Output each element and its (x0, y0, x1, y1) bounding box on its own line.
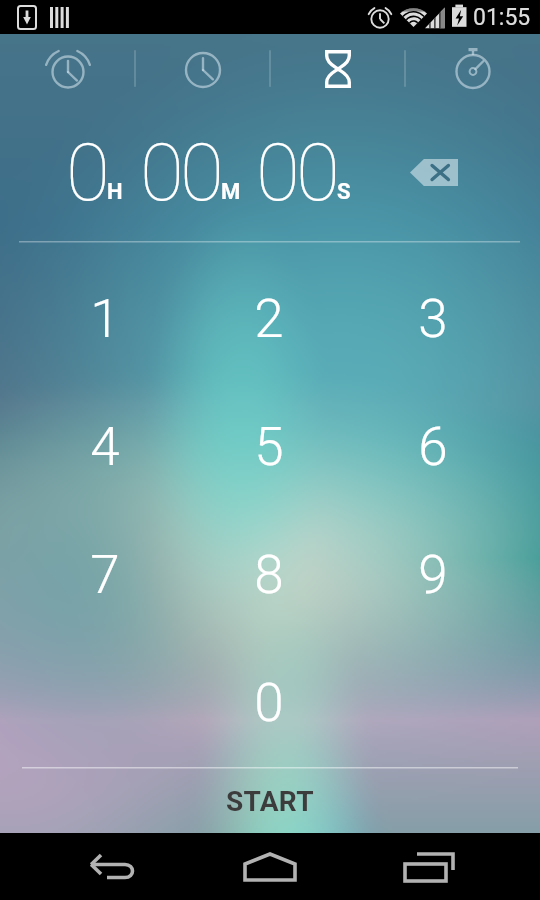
button[interactable]: 7 (23, 511, 187, 639)
staticText: 0 (254, 672, 284, 734)
button[interactable]: Timer (270, 34, 405, 100)
button[interactable]: 4 (23, 383, 187, 511)
staticText: 2 (254, 288, 284, 350)
staticText: 7 (90, 544, 120, 606)
staticText: 00 (256, 126, 336, 220)
staticText: 01:55 (473, 4, 531, 31)
button[interactable]: 3 (351, 254, 515, 383)
staticText: 8 (254, 544, 284, 606)
staticText: 5 (254, 416, 284, 478)
staticText: 00 (140, 126, 220, 220)
button[interactable]: 6 (351, 383, 515, 511)
staticText: 1 (90, 288, 120, 350)
staticText: 9 (418, 544, 448, 606)
button[interactable]: 0 (187, 639, 351, 767)
button[interactable]: Back (22, 833, 202, 900)
staticText: 6 (418, 416, 448, 478)
button[interactable]: Recent apps (339, 833, 519, 900)
button[interactable]: Clock (135, 34, 270, 100)
staticText: H (107, 179, 123, 205)
button[interactable]: 9 (351, 511, 515, 639)
button[interactable]: Delete (398, 144, 470, 200)
button[interactable]: 8 (187, 511, 351, 639)
button[interactable]: 1 (23, 254, 187, 383)
button[interactable]: Alarm (0, 34, 135, 100)
button[interactable]: 2 (187, 254, 351, 383)
staticText: S (337, 179, 351, 205)
staticText: 0 (66, 126, 106, 220)
button[interactable]: 5 (187, 383, 351, 511)
button[interactable]: Stopwatch (405, 34, 540, 100)
staticText: START (226, 785, 314, 818)
staticText: M (221, 179, 241, 205)
staticText: 4 (90, 416, 120, 478)
staticText: 3 (418, 288, 448, 350)
button[interactable]: START (0, 767, 540, 833)
button[interactable]: Home (180, 833, 360, 900)
